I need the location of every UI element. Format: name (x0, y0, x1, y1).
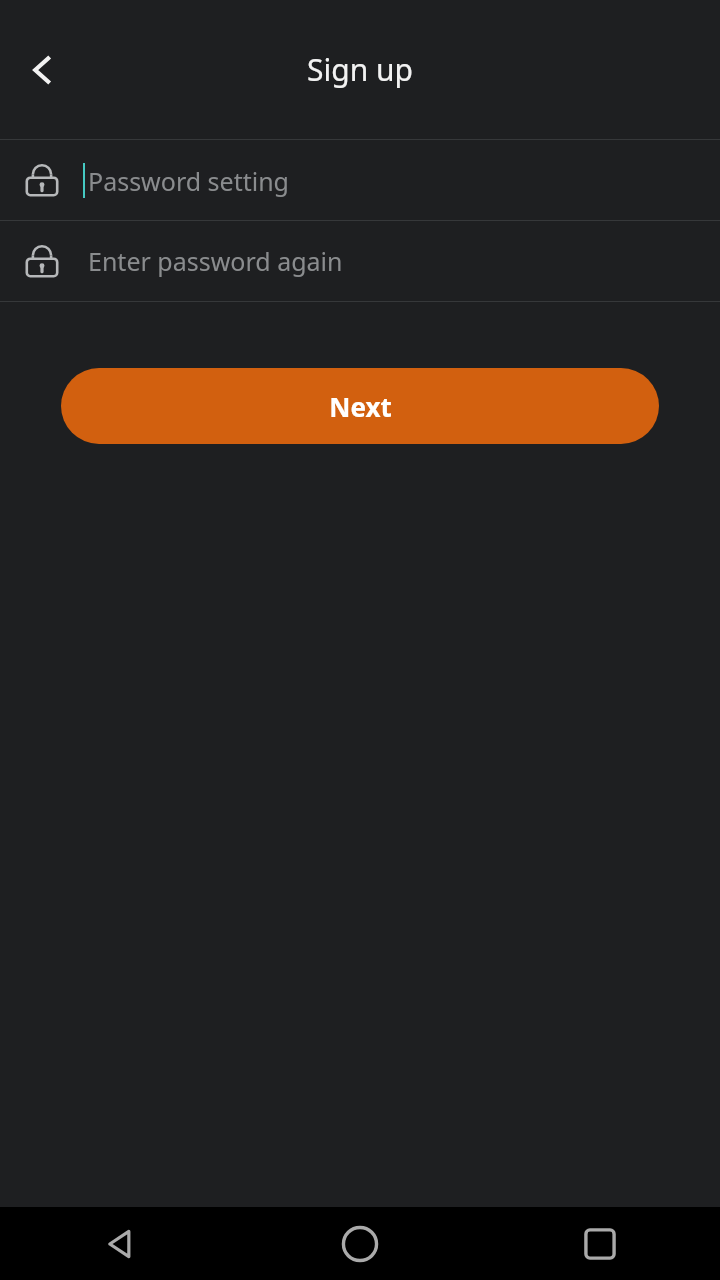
button[interactable]: Password setting (0, 140, 720, 220)
button[interactable]: Back (0, 1207, 240, 1280)
button[interactable]: Enter password again (0, 221, 720, 301)
button[interactable]: Recent apps (480, 1207, 720, 1280)
button[interactable]: Home (240, 1207, 480, 1280)
staticText: Password setting (88, 164, 289, 198)
button[interactable]: Back (8, 36, 76, 104)
staticText: Next (329, 389, 392, 424)
staticText: Enter password again (88, 244, 343, 278)
button[interactable]: Next (61, 368, 659, 444)
staticText: Sign up (307, 49, 413, 90)
